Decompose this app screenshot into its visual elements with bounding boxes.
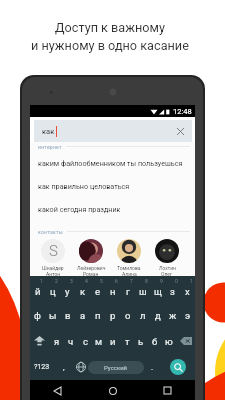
staticText: Олег [161,271,173,276]
staticText: 0 [175,278,178,284]
staticText: 5 [100,278,103,284]
button[interactable]: 0 [165,276,180,302]
button[interactable]: Change language [74,354,88,380]
button[interactable]: э [180,302,195,328]
button[interactable]: Томилова [110,239,148,276]
button[interactable]: 9 [150,276,165,302]
button[interactable]: 3 [60,276,75,302]
staticText: 3 [70,278,73,284]
staticText: каким файлообменником ты пользуешься [38,159,183,167]
staticText: 8 [145,278,148,284]
staticText: ь [138,336,144,347]
staticText: как [42,127,55,136]
button[interactable]: б [148,328,162,354]
staticText: контакты [38,229,63,235]
button[interactable]: Recents [140,380,195,400]
button[interactable]: я [49,328,64,354]
button[interactable]: какой сегодня праздник [30,197,195,220]
button[interactable]: ч [64,328,78,354]
staticText: м [95,336,103,347]
staticText: ф [34,310,41,321]
staticText: д [155,310,161,321]
button[interactable]: каким файлообменником ты пользуешься [30,151,195,174]
button[interactable]: Backspace [176,328,195,354]
staticText: 1 [190,278,193,284]
button[interactable]: Home [85,380,140,400]
button[interactable]: Search [160,354,195,380]
staticText: ч [68,336,74,347]
button[interactable]: ?123 [30,354,54,380]
button[interactable]: ь [134,328,148,354]
button[interactable]: как [34,120,192,142]
staticText: Роман [83,271,99,276]
staticText: б [152,336,158,347]
staticText: Антон [46,271,61,276]
button[interactable]: ы [45,302,60,328]
button[interactable]: д [150,302,165,328]
staticText: Доступ к важному [55,20,165,35]
staticText: , [63,363,65,372]
button[interactable]: в [60,302,75,328]
button[interactable]: Лохтин [148,239,186,276]
staticText: и [110,336,116,347]
button[interactable]: Лейзерович [72,239,110,276]
button[interactable]: . [144,354,160,380]
button[interactable]: и [106,328,120,354]
staticText: й [35,286,41,297]
staticText: ж [169,310,177,321]
staticText: ?123 [34,363,50,371]
staticText: в [65,310,71,321]
button[interactable]: Русский [88,361,144,374]
staticText: и нужному в одно касание [31,38,189,53]
staticText: Лохтин [159,265,176,271]
staticText: 9 [160,278,163,284]
staticText: ы [49,310,57,321]
button[interactable]: 1 [30,276,45,302]
staticText: э [185,310,191,321]
button[interactable]: ю [162,328,176,354]
button[interactable]: ф [30,302,45,328]
staticText: 6 [115,278,118,284]
staticText: Русский [104,364,128,371]
button[interactable]: о [120,302,135,328]
button[interactable]: , [54,354,74,380]
button[interactable]: 7 [120,276,135,302]
button[interactable]: 8 [135,276,150,302]
staticText: х [185,286,190,297]
button[interactable]: ж [165,302,180,328]
staticText: щ [154,286,162,297]
staticText: как правильно целоваться [38,182,130,190]
staticText: е [95,286,101,297]
button[interactable]: л [135,302,150,328]
staticText: Шнайдер [42,265,64,271]
button[interactable]: S [34,239,72,276]
button[interactable]: с [78,328,92,354]
button[interactable]: п [90,302,105,328]
button[interactable]: 2 [45,276,60,302]
staticText: л [140,310,146,321]
button[interactable]: 1 [180,276,195,302]
staticText: г [126,286,130,297]
staticText: я [54,336,60,347]
button[interactable]: как правильно целоваться [30,174,195,197]
button[interactable]: 6 [105,276,120,302]
staticText: 12:48 [173,107,192,116]
button[interactable]: р [105,302,120,328]
staticText: ю [165,336,173,347]
staticText: интернет [38,144,62,150]
button[interactable]: м [92,328,106,354]
staticText: Лейзерович [77,265,106,271]
button[interactable]: а [75,302,90,328]
staticText: . [151,363,154,372]
button[interactable]: т [120,328,134,354]
button[interactable]: Shift [30,328,49,354]
staticText: у [65,286,70,297]
button[interactable]: Clear [175,126,185,136]
staticText: а [80,310,86,321]
staticText: S [49,242,58,260]
staticText: т [125,336,130,347]
button[interactable]: 5 [90,276,105,302]
button[interactable]: Back [30,380,85,400]
button[interactable]: 4 [75,276,90,302]
staticText: Томилова [117,265,141,271]
